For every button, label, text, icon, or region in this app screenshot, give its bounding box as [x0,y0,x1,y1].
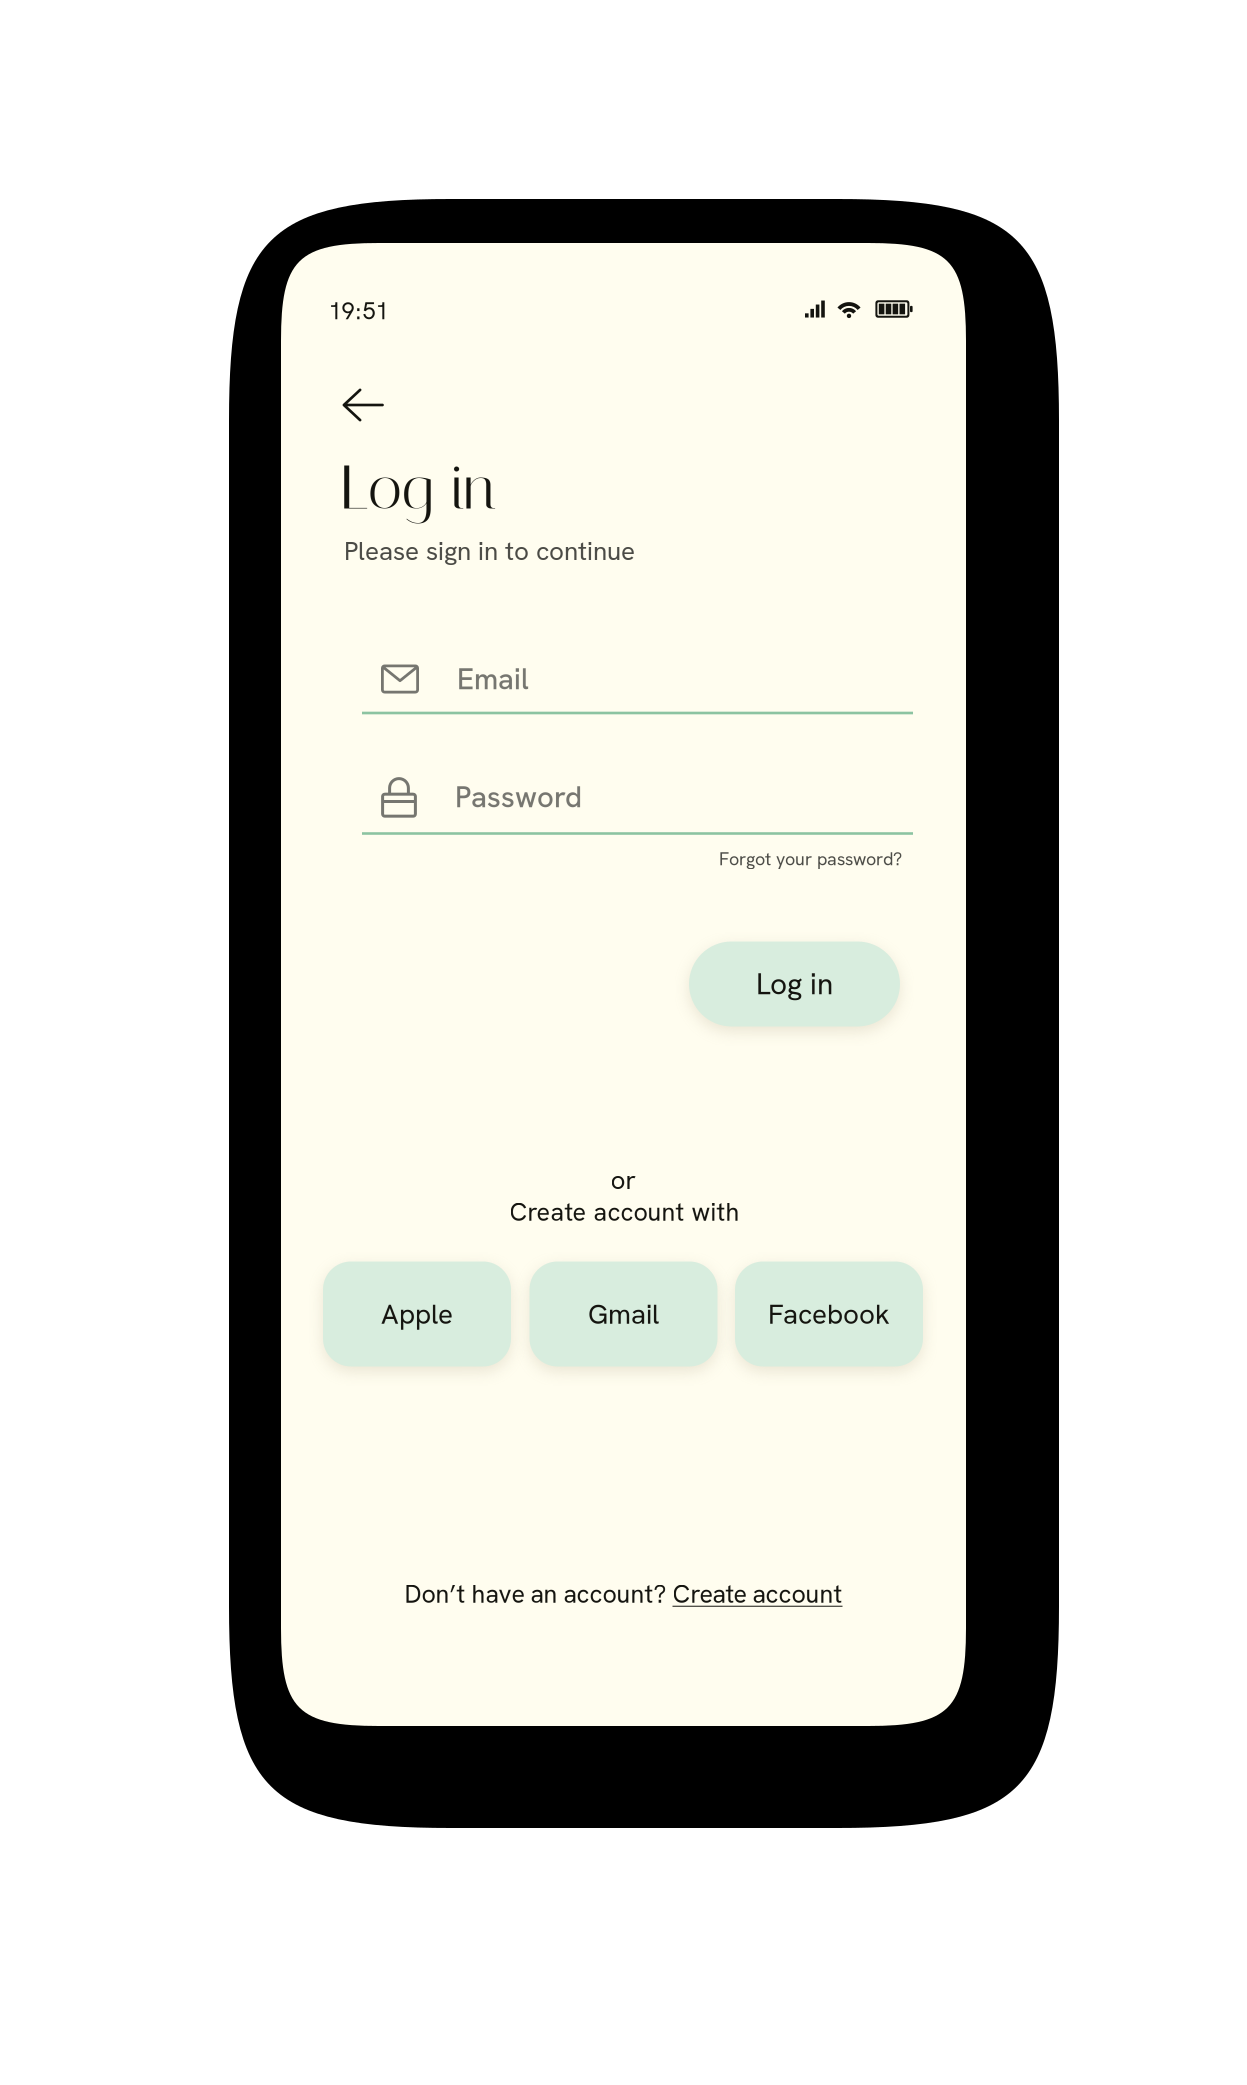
staticText: Email [457,660,529,698]
button[interactable]: Apple [323,1261,511,1366]
staticText: 19 : 51 [328,296,388,326]
staticText: Gmail [588,1296,659,1332]
staticText: Facebook [768,1296,890,1332]
staticText: Create account with [509,1196,739,1228]
staticText: Please sign in to continue [344,534,635,568]
button[interactable]: Log in [689,941,900,1026]
button[interactable]: Gmail [529,1261,717,1366]
staticText: Don’t have an account? [404,1578,666,1610]
staticText: Log in [340,452,496,523]
staticText: Create account [672,1578,842,1610]
button[interactable]: Back [328,374,398,436]
staticText: Forgot your password? [719,847,902,871]
button[interactable]: Facebook [735,1261,923,1366]
button[interactable]: Forgot your password? [622,842,902,876]
staticText: Password [455,778,582,816]
staticText: Apple [381,1296,453,1332]
staticText: or [610,1163,636,1197]
staticText: Log in [756,965,833,1003]
button[interactable]: Don’t have an account? [373,1574,873,1614]
